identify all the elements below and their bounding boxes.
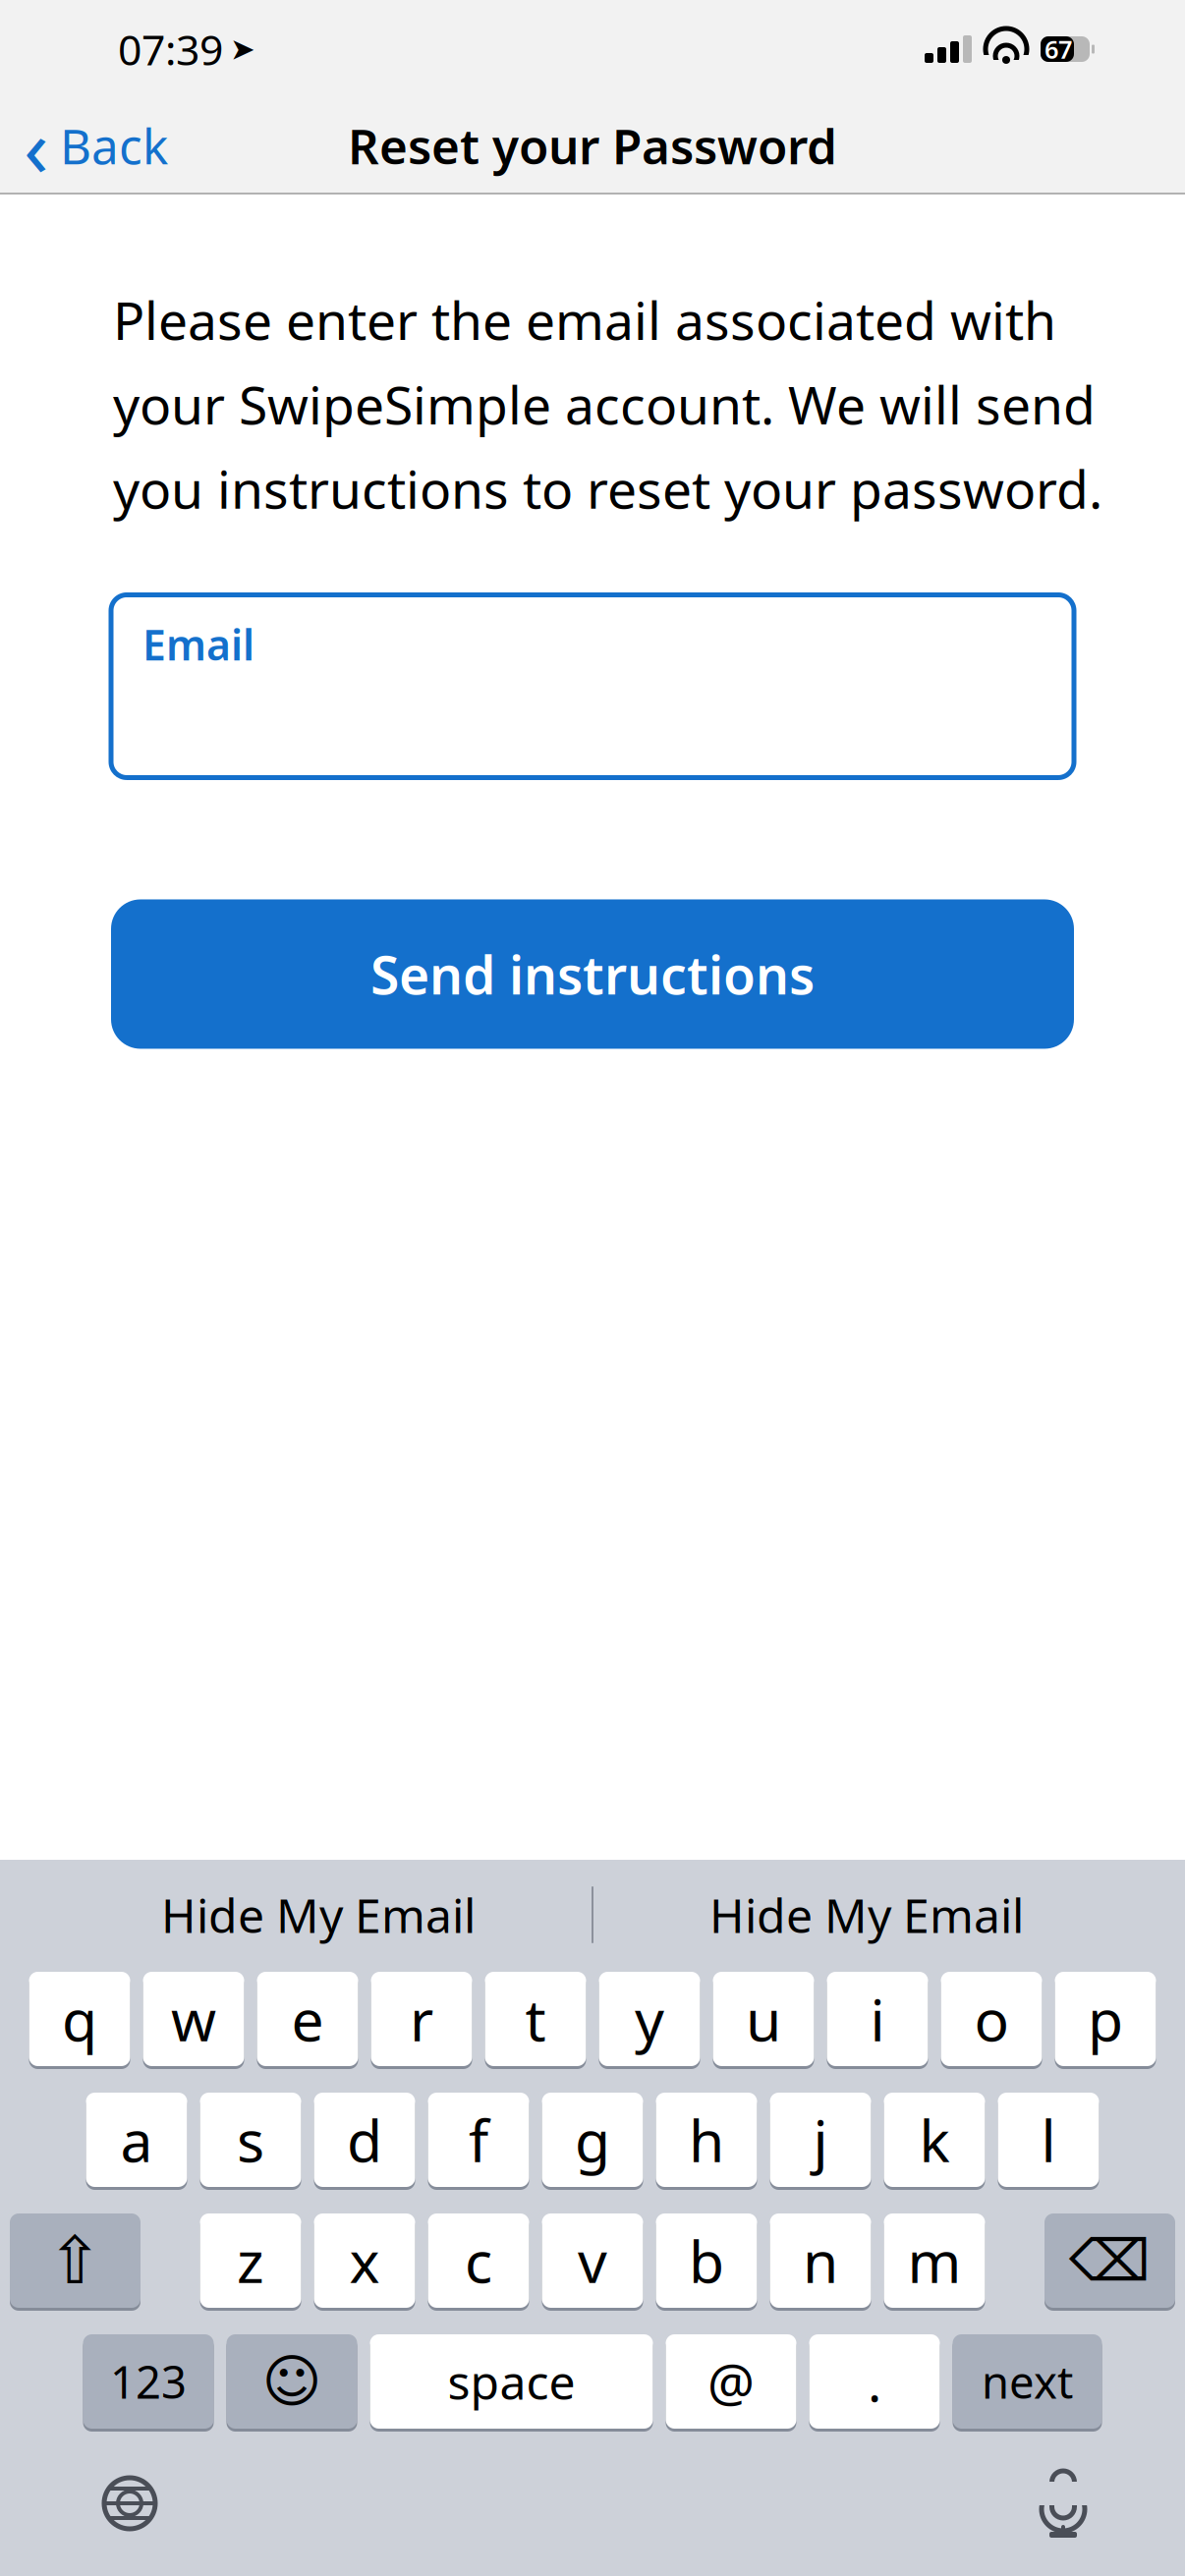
staticText: a bbox=[120, 2101, 153, 2178]
staticText: ➤ bbox=[230, 32, 255, 66]
button[interactable]: n bbox=[770, 2212, 871, 2310]
button[interactable]: e bbox=[257, 1970, 358, 2068]
staticText: Email bbox=[142, 616, 254, 672]
button[interactable]: v bbox=[542, 2212, 643, 2310]
button[interactable]: . bbox=[809, 2332, 940, 2431]
staticText: y bbox=[635, 1981, 664, 2057]
staticText: 123 bbox=[110, 2352, 187, 2411]
button[interactable]: @ bbox=[666, 2332, 796, 2431]
button[interactable]: z bbox=[200, 2212, 301, 2310]
staticText: @ bbox=[707, 2347, 755, 2416]
button[interactable]: b bbox=[656, 2212, 757, 2310]
button[interactable]: j bbox=[770, 2091, 871, 2189]
staticText: o bbox=[974, 1981, 1009, 2057]
button[interactable]: g bbox=[542, 2091, 643, 2189]
button[interactable]: Delete bbox=[1044, 2212, 1175, 2310]
button[interactable]: Shift bbox=[10, 2212, 141, 2310]
staticText: f bbox=[469, 2101, 488, 2178]
staticText: Back bbox=[60, 113, 168, 178]
button[interactable]: r bbox=[371, 1970, 472, 2068]
staticText: your SwipeSimple account. We will send bbox=[113, 369, 1096, 439]
staticText: 07:39 bbox=[118, 21, 223, 77]
staticText: Reset your Password bbox=[348, 113, 837, 178]
button[interactable]: f bbox=[428, 2091, 529, 2189]
button[interactable]: w bbox=[143, 1970, 244, 2068]
button[interactable]: Switch keyboard bbox=[102, 2476, 157, 2531]
staticText: w bbox=[171, 1981, 216, 2057]
button[interactable]: Hide My Email bbox=[593, 1869, 1140, 1961]
staticText: z bbox=[237, 2222, 264, 2299]
button[interactable]: t bbox=[485, 1970, 586, 2068]
staticText: i bbox=[870, 1981, 885, 2057]
button[interactable]: k bbox=[884, 2091, 985, 2189]
staticText: t bbox=[525, 1981, 546, 2057]
staticText: r bbox=[410, 1981, 433, 2057]
button[interactable]: Send instructions bbox=[111, 899, 1074, 1049]
button[interactable]: d bbox=[314, 2091, 415, 2189]
button[interactable]: l bbox=[998, 2091, 1099, 2189]
staticText: c bbox=[465, 2222, 492, 2299]
staticText: v bbox=[578, 2222, 607, 2299]
staticText: q bbox=[62, 1981, 97, 2057]
staticText: . bbox=[868, 2347, 881, 2416]
button[interactable]: c bbox=[428, 2212, 529, 2310]
staticText: p bbox=[1088, 1981, 1123, 2057]
button[interactable]: q bbox=[29, 1970, 130, 2068]
staticText: x bbox=[349, 2222, 380, 2299]
staticText: l bbox=[1041, 2101, 1056, 2178]
staticText: s bbox=[237, 2101, 264, 2178]
button[interactable]: i bbox=[827, 1970, 928, 2068]
staticText: Hide My Email bbox=[709, 1883, 1024, 1946]
button[interactable]: space bbox=[370, 2332, 653, 2431]
staticText: m bbox=[907, 2222, 961, 2299]
button[interactable]: ‹ bbox=[0, 103, 192, 188]
button[interactable]: Hide My Email bbox=[45, 1869, 592, 1961]
button[interactable]: p bbox=[1055, 1970, 1156, 2068]
button[interactable]: s bbox=[200, 2091, 301, 2189]
staticText: j bbox=[813, 2101, 828, 2178]
staticText: n bbox=[803, 2222, 838, 2299]
button[interactable]: m bbox=[884, 2212, 985, 2310]
staticText: b bbox=[689, 2222, 724, 2299]
staticText: next bbox=[982, 2352, 1073, 2411]
button[interactable]: Dictation bbox=[1036, 2466, 1091, 2541]
staticText: space bbox=[448, 2350, 575, 2413]
button[interactable]: 123 bbox=[83, 2332, 214, 2431]
button[interactable]: a bbox=[86, 2091, 187, 2189]
button[interactable]: ☺ bbox=[226, 2332, 357, 2431]
staticText: g bbox=[575, 2101, 610, 2178]
button[interactable]: h bbox=[656, 2091, 757, 2189]
button[interactable]: Email bbox=[111, 595, 1074, 778]
staticText: Send instructions bbox=[370, 939, 815, 1009]
button[interactable]: x bbox=[314, 2212, 415, 2310]
staticText: u bbox=[746, 1981, 781, 2057]
staticText: d bbox=[347, 2101, 382, 2178]
staticText: Hide My Email bbox=[161, 1883, 476, 1946]
staticText: Please enter the email associated with bbox=[113, 285, 1056, 354]
staticText: ⌫ bbox=[1069, 2228, 1151, 2293]
staticText: ☺ bbox=[262, 2349, 322, 2414]
button[interactable]: u bbox=[713, 1970, 814, 2068]
button[interactable]: y bbox=[599, 1970, 700, 2068]
staticText: e bbox=[291, 1981, 324, 2057]
staticText: you instructions to reset your password. bbox=[113, 454, 1102, 523]
button[interactable]: o bbox=[941, 1970, 1042, 2068]
staticText: k bbox=[919, 2101, 950, 2178]
staticText: h bbox=[689, 2101, 724, 2178]
staticText: 67 bbox=[1044, 33, 1072, 66]
button[interactable]: next bbox=[953, 2332, 1102, 2431]
staticText: ⇧ bbox=[48, 2223, 103, 2298]
staticText: ‹ bbox=[24, 91, 49, 199]
